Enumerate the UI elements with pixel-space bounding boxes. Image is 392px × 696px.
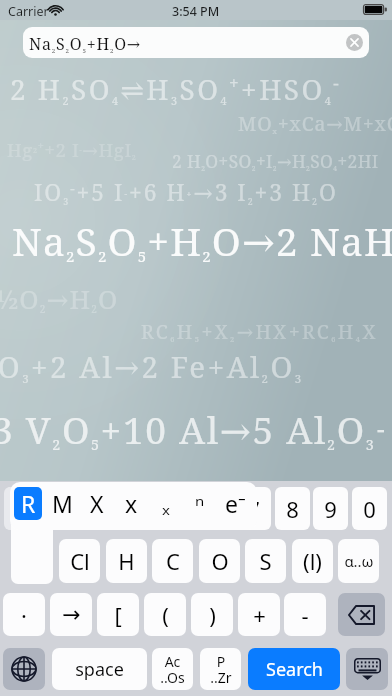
staticText: S: [259, 546, 272, 576]
staticText: Carrier: [8, 3, 49, 20]
staticText: 3:54 PM: [172, 3, 220, 20]
button[interactable]: X: [80, 487, 114, 520]
staticText: Fe2O3+2 Al→2 Fe+Al2O3: [0, 346, 304, 386]
button[interactable]: 3: [82, 487, 117, 530]
button[interactable]: →: [50, 593, 92, 636]
staticText: R: [21, 488, 36, 519]
button[interactable]: x: [114, 487, 148, 520]
staticText: Hg2++2 I-→HgI2: [7, 137, 137, 162]
button[interactable]: ): [191, 593, 233, 636]
button[interactable]: -: [284, 593, 326, 636]
staticText: MOx+xCa→M+xCaO: [238, 110, 392, 137]
staticText: M: [52, 488, 73, 519]
staticText: Cl: [70, 546, 90, 576]
button[interactable]: +: [238, 593, 280, 636]
staticText: 8: [286, 494, 299, 524]
staticText: Search: [266, 657, 323, 682]
button[interactable]: (l): [292, 539, 333, 583]
staticText: space: [75, 657, 124, 682]
button[interactable]: H: [106, 539, 147, 583]
staticText: 4: [132, 494, 145, 524]
button[interactable]: P ..Zr: [200, 648, 241, 690]
staticText: 2 H2SO4⇌H3SO4++HSO4-: [10, 70, 342, 108]
button[interactable]: Ac ..Os: [152, 648, 193, 690]
staticText: e⁻: [225, 488, 246, 519]
staticText: H2+½O2→H2O: [0, 281, 119, 316]
button[interactable]: 6: [198, 487, 233, 530]
button[interactable]: 0: [352, 487, 387, 530]
staticText: Na2S2O5+H2O→: [29, 33, 142, 55]
button[interactable]: 8: [275, 487, 310, 530]
button[interactable]: Switch keyboard: [3, 648, 45, 690]
button[interactable]: (: [144, 593, 186, 636]
button[interactable]: α..ω: [338, 539, 379, 583]
staticText: 7: [247, 494, 260, 524]
staticText: C: [166, 546, 180, 576]
staticText: (l): [303, 546, 322, 576]
staticText: X: [90, 488, 104, 519]
staticText: -: [301, 600, 309, 630]
button[interactable]: 5: [159, 487, 194, 530]
staticText: P ..Zr: [210, 652, 232, 687]
staticText: →: [62, 602, 81, 628]
staticText: Na2S2O5+H2O→2 NaHSO3: [12, 214, 392, 267]
staticText: x: [125, 488, 138, 519]
button[interactable]: 9: [313, 487, 348, 530]
button[interactable]: C: [152, 539, 193, 583]
button[interactable]: space: [52, 648, 147, 690]
button[interactable]: e⁻: [218, 487, 252, 520]
button[interactable]: 7: [236, 487, 271, 530]
staticText: RC6H5+X2→HX+RC6H4X: [141, 318, 378, 345]
button[interactable]: Hide keyboard: [346, 648, 388, 690]
button[interactable]: R: [14, 487, 42, 520]
button[interactable]: O: [199, 539, 240, 583]
staticText: IO3-+5 I-+6 H+→3 I2+3 H2O: [34, 177, 338, 208]
staticText: H: [118, 546, 135, 576]
staticText: ·: [21, 600, 27, 630]
button[interactable]: M: [45, 487, 79, 520]
button[interactable]: 1: [5, 487, 40, 530]
staticText: O: [211, 546, 229, 576]
button[interactable]: Backspace: [338, 593, 385, 636]
staticText: 2 H2O+SO2+I2→H2SO4+2HI: [172, 150, 379, 174]
button[interactable]: [: [97, 593, 139, 636]
button[interactable]: Cl: [59, 539, 100, 583]
staticText: 3 V2O5+10 Al→5 Al2O3+6 V: [0, 404, 384, 454]
staticText: 3: [93, 494, 106, 524]
staticText: (: [162, 600, 169, 630]
staticText: Ac ..Os: [160, 652, 185, 687]
staticText: ₓ: [162, 488, 170, 519]
staticText: +: [253, 600, 266, 630]
staticText: [: [114, 600, 122, 630]
button[interactable]: Search: [248, 648, 340, 690]
staticText: 9: [324, 494, 337, 524]
staticText: α..ω: [344, 551, 374, 571]
button[interactable]: 4: [121, 487, 156, 530]
button[interactable]: S: [245, 539, 286, 583]
staticText: 0: [363, 494, 376, 524]
staticText: ): [209, 600, 216, 630]
button[interactable]: Clear text: [346, 34, 363, 51]
button[interactable]: Na2S2O5+H2O→: [23, 27, 369, 58]
button[interactable]: ·: [3, 593, 45, 636]
staticText: 1: [16, 494, 29, 524]
button[interactable]: ₓ: [149, 487, 183, 520]
staticText: 2: [55, 494, 68, 524]
staticText: ⁿ: [195, 488, 205, 519]
button[interactable]: ⁿ: [183, 487, 217, 520]
button[interactable]: 2: [44, 487, 79, 530]
